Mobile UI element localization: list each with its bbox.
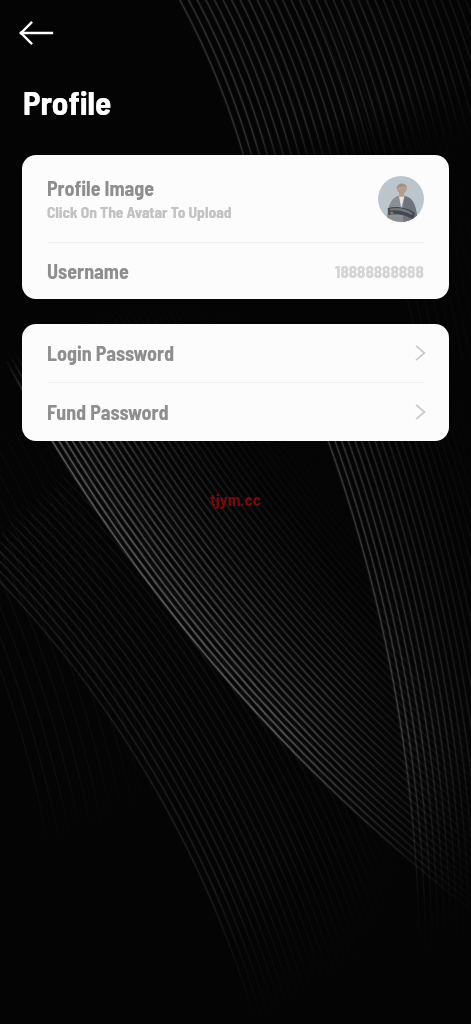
button[interactable]: Username (22, 243, 449, 299)
staticText: Profile Image (47, 176, 155, 200)
staticText: Username (47, 259, 335, 283)
button[interactable]: Login Password (22, 324, 449, 382)
staticText: 18888888888 (335, 261, 424, 281)
staticText: tjym.cc (210, 489, 261, 509)
button[interactable]: Profile Image (22, 155, 449, 242)
staticText: Profile (23, 82, 112, 122)
button[interactable]: Fund Password (22, 383, 449, 441)
staticText: Click On The Avatar To Upload (47, 202, 232, 221)
button[interactable]: Back (13, 9, 61, 57)
staticText: Fund Password (47, 400, 416, 424)
staticText: Login Password (47, 341, 416, 365)
button[interactable]: Upload profile photo (378, 176, 424, 222)
